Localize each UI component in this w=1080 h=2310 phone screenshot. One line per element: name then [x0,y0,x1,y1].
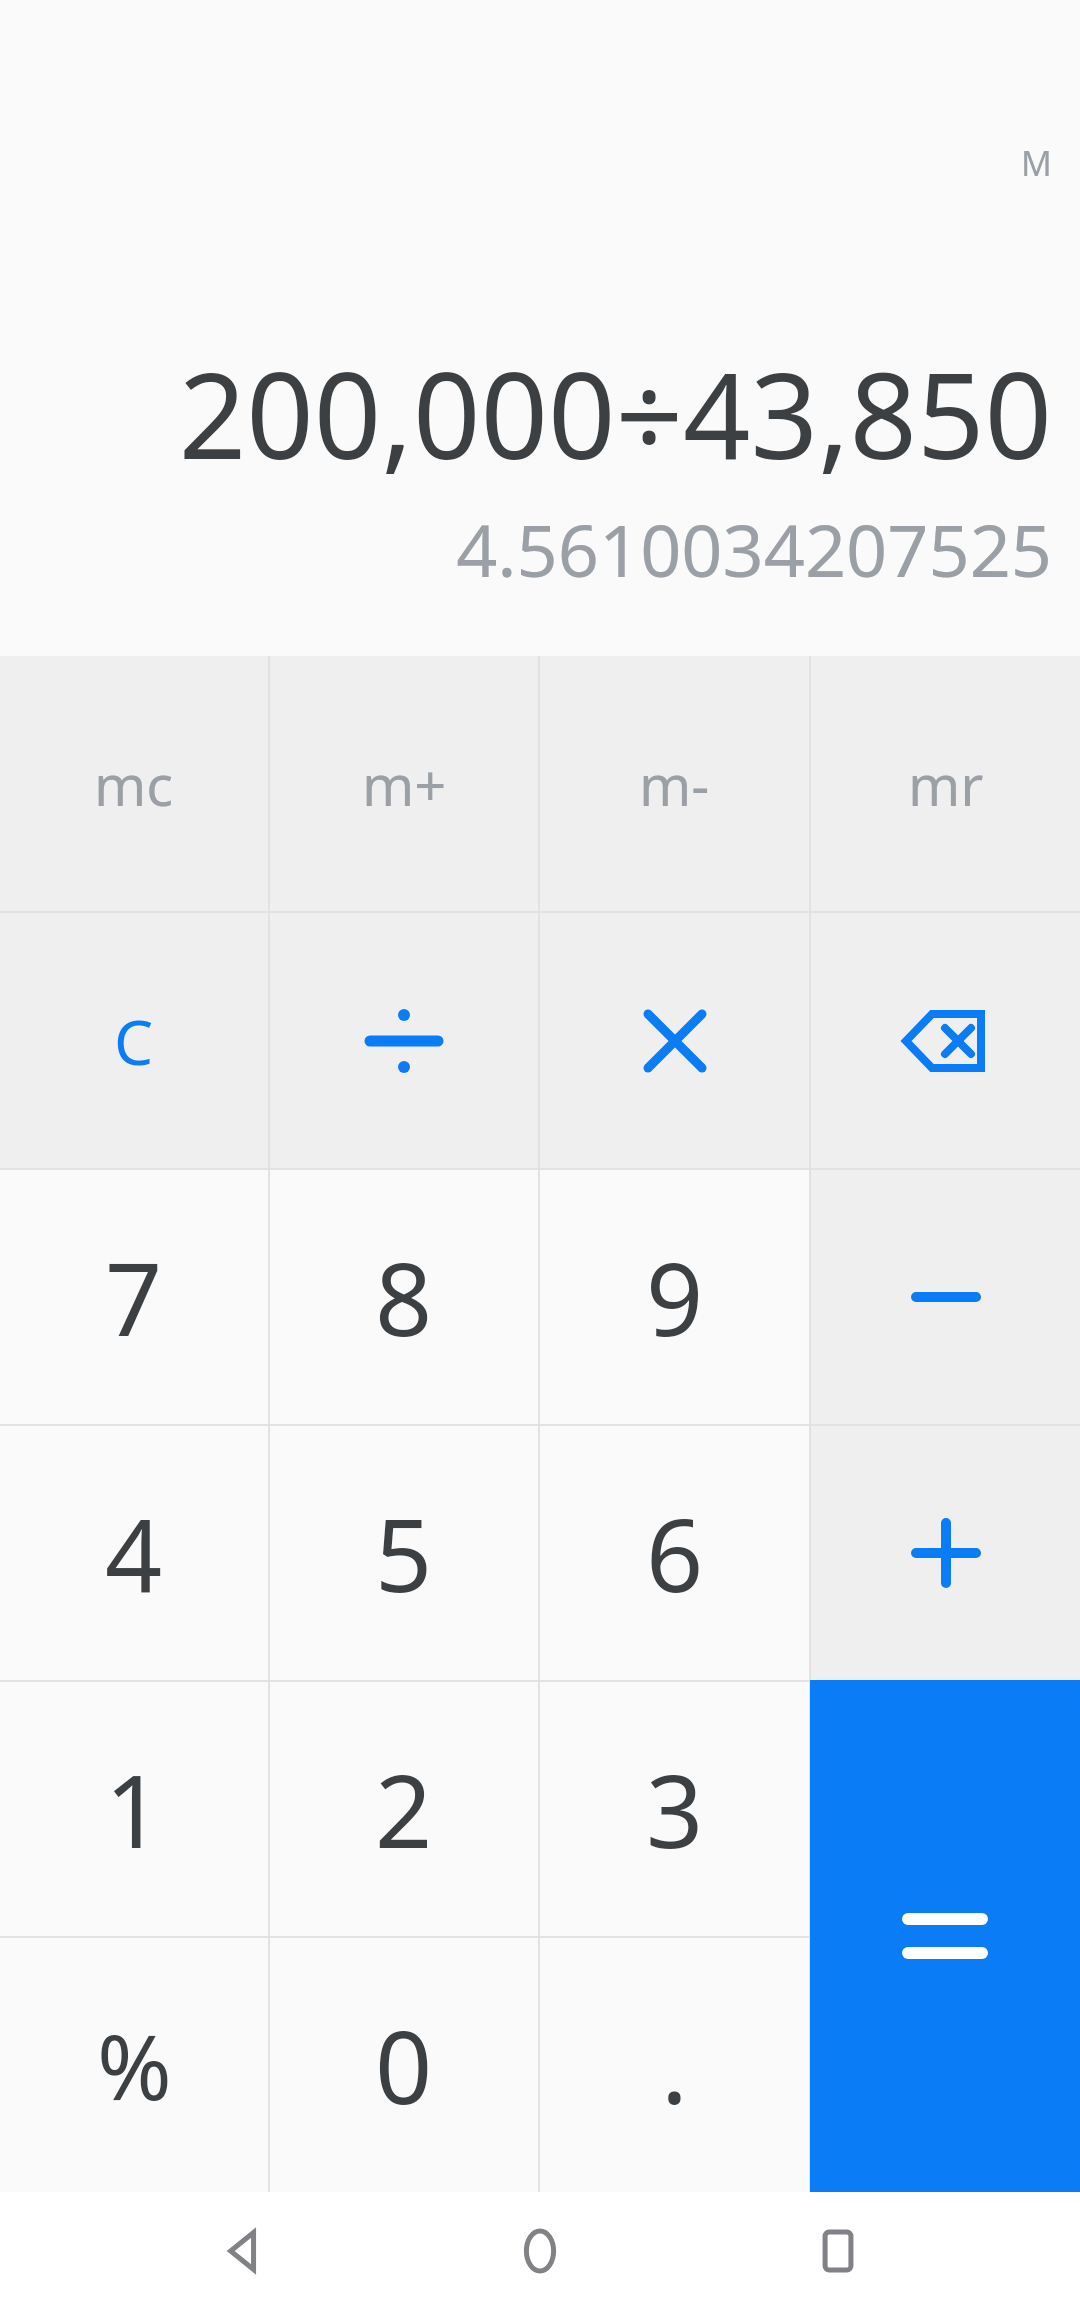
button[interactable]: 0 [270,1938,538,2192]
button[interactable]: 9 [540,1170,809,1424]
staticText: 2 [375,1741,433,1877]
staticText: M [1021,140,1052,186]
staticText: 4 [105,1485,163,1621]
staticText: 0 [375,1997,433,2133]
button[interactable]: 1 [0,1682,268,1936]
button[interactable]: 4 [0,1426,268,1680]
button[interactable]: mr [811,656,1080,911]
staticText: 9 [646,1229,704,1365]
button[interactable]: 2 [270,1682,538,1936]
staticText: m- [639,746,710,822]
button[interactable]: Equals [810,1680,1080,2192]
staticText: 200,000÷43,850 [178,333,1052,494]
button[interactable]: mc [0,656,268,911]
button[interactable]: Back [188,2196,298,2306]
button[interactable]: . [540,1938,809,2192]
button[interactable]: Home [485,2196,595,2306]
button[interactable]: m+ [270,656,538,911]
button[interactable]: C [0,913,268,1168]
staticText: % [97,2004,172,2127]
staticText: 5 [375,1485,433,1621]
staticText: mc [94,746,174,822]
button[interactable]: Divide [270,913,538,1168]
staticText: mr [908,746,984,822]
button[interactable]: Recents [783,2196,893,2306]
button[interactable]: Backspace [811,913,1080,1168]
button[interactable]: 8 [270,1170,538,1424]
staticText: C [114,999,154,1083]
staticText: 7 [105,1229,163,1365]
staticText: 4.5610034207525 [456,500,1052,598]
button[interactable]: 6 [540,1426,809,1680]
staticText: m+ [362,746,447,822]
button[interactable]: Plus [811,1426,1080,1680]
button[interactable]: m- [540,656,809,911]
staticText: 8 [375,1229,433,1365]
staticText: 3 [646,1741,704,1877]
button[interactable]: Minus [811,1170,1080,1424]
button[interactable]: % [0,1938,268,2192]
button[interactable]: 5 [270,1426,538,1680]
button[interactable]: 3 [540,1682,809,1936]
staticText: 6 [646,1485,704,1621]
staticText: 1 [105,1741,163,1877]
button[interactable]: 7 [0,1170,268,1424]
staticText: . [661,1997,688,2133]
button[interactable]: Multiply [540,913,809,1168]
